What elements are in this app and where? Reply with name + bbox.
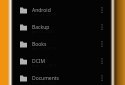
staticText: DCIM xyxy=(32,58,46,65)
button[interactable]: More options xyxy=(96,52,107,69)
button[interactable]: Books xyxy=(0,35,125,52)
button[interactable]: More options xyxy=(96,18,107,35)
button[interactable]: Documents xyxy=(0,69,125,85)
staticText: Android xyxy=(32,7,51,14)
button[interactable]: More options xyxy=(96,35,107,52)
button[interactable]: Android xyxy=(0,1,125,18)
button[interactable]: DCIM xyxy=(0,52,125,69)
staticText: Documents xyxy=(32,75,59,82)
button[interactable]: More options xyxy=(96,69,107,85)
staticText: Backup xyxy=(32,24,50,31)
button[interactable]: More options xyxy=(96,1,107,18)
button[interactable]: Backup xyxy=(0,18,125,35)
staticText: Books xyxy=(32,41,47,48)
staticText: Jan 04, 2020 xyxy=(32,29,55,34)
